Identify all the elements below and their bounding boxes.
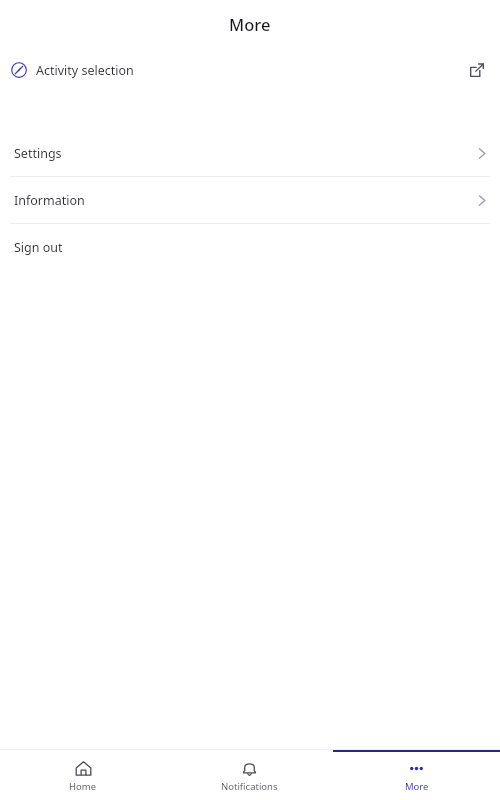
staticText: Sign out bbox=[14, 239, 63, 256]
staticText: Information bbox=[14, 192, 85, 209]
staticText: Settings bbox=[14, 145, 62, 162]
staticText: More bbox=[405, 780, 429, 793]
button[interactable]: More bbox=[333, 750, 500, 793]
button[interactable]: Settings bbox=[0, 130, 500, 176]
other: Open activity selection bbox=[465, 58, 489, 82]
button[interactable]: Sign out bbox=[0, 224, 500, 270]
button[interactable]: Information bbox=[0, 177, 500, 223]
staticText: Home bbox=[69, 780, 97, 793]
staticText: Notifications bbox=[221, 780, 278, 793]
staticText: Activity selection bbox=[36, 62, 134, 79]
staticText: More bbox=[229, 13, 271, 35]
button[interactable]: Activity selection bbox=[0, 48, 500, 92]
button[interactable]: Notifications bbox=[166, 750, 333, 793]
button[interactable]: Home bbox=[0, 750, 166, 793]
